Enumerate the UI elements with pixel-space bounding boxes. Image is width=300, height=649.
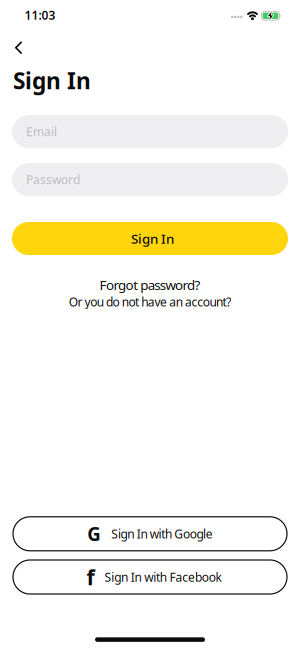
staticText: f <box>86 563 94 591</box>
button[interactable]: Sign In <box>12 222 288 255</box>
staticText: Sign In <box>131 230 174 247</box>
staticText: Password <box>26 171 80 187</box>
staticText: 11:03 <box>24 7 55 23</box>
staticText: G <box>87 521 101 546</box>
staticText: Email <box>26 123 57 139</box>
button[interactable]: f <box>13 560 287 594</box>
staticText: Sign In <box>13 65 91 95</box>
button[interactable]: G <box>13 517 287 551</box>
staticText: Sign In with Facebook <box>104 569 221 585</box>
button[interactable]: Back <box>3 33 33 63</box>
staticText: Forgot password? <box>99 276 201 294</box>
staticText: Or you do not have an account? <box>69 294 231 310</box>
button[interactable]: Forgot password? <box>99 276 201 294</box>
staticText: Sign In with Google <box>111 526 213 542</box>
button[interactable]: Or you do not have an account? <box>69 294 231 310</box>
